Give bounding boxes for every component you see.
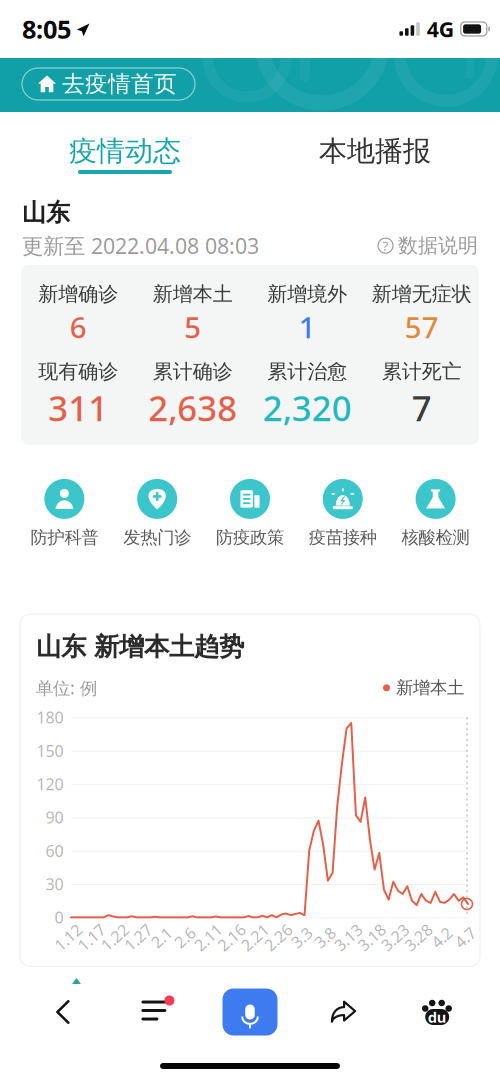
staticText: 核酸检测 [402, 527, 470, 548]
staticText: 去疫情首页 [62, 70, 177, 98]
staticText: 新增境外 [267, 282, 347, 306]
staticText: 57 [405, 307, 439, 346]
staticText: 新增本土 [153, 282, 233, 306]
staticText: 311 [48, 385, 108, 431]
staticText: 150 [36, 740, 63, 761]
staticText: 单位: 例 [36, 676, 97, 699]
staticText: 现有确诊 [38, 359, 118, 384]
staticText: 4.2 [431, 927, 453, 948]
staticText: 2.1 [150, 927, 172, 948]
button[interactable]: 去疫情首页 [22, 68, 195, 100]
staticText: 2.21 [239, 927, 270, 948]
staticText: 山东 新增本土趋势 [36, 631, 244, 662]
staticText: 发热门诊 [123, 527, 191, 548]
button[interactable]: 防护科普 [18, 479, 111, 548]
staticText: 数据说明 [398, 233, 478, 258]
staticText: ? [382, 237, 388, 254]
button[interactable]: 本地播报 [250, 112, 500, 182]
staticText: 本地播报 [319, 134, 431, 168]
staticText: 3.18 [356, 927, 387, 948]
staticText: 3.28 [403, 927, 434, 948]
button[interactable]: 发热门诊 [111, 479, 204, 548]
staticText: 山东 [22, 198, 70, 227]
staticText: 3.3 [290, 927, 312, 948]
button[interactable]: 疫苗接种 [296, 479, 389, 548]
staticText: 30 [45, 873, 63, 895]
button[interactable]: 疫情动态 [0, 112, 250, 182]
staticText: 4.7 [454, 927, 476, 948]
staticText: 8:05 [22, 12, 71, 46]
staticText: 2.16 [216, 927, 247, 948]
staticText: 7 [412, 385, 432, 431]
staticText: 6 [70, 307, 87, 346]
staticText: 新增本土 [396, 677, 464, 698]
button[interactable]: Tabs [110, 984, 203, 1040]
staticText: 3.8 [314, 927, 336, 948]
staticText: 1.17 [76, 927, 107, 948]
button[interactable]: ? [378, 233, 478, 258]
staticText: 2,638 [148, 385, 237, 431]
staticText: 1.12 [52, 927, 83, 948]
staticText: 3.23 [379, 927, 410, 948]
button[interactable]: Share [297, 984, 390, 1040]
button[interactable]: Baidu home [390, 984, 484, 1040]
staticText: 累计确诊 [153, 359, 233, 384]
staticText: 3.13 [333, 927, 364, 948]
staticText: 1 [299, 307, 316, 346]
staticText: 60 [45, 840, 63, 861]
staticText: 累计死亡 [382, 359, 462, 384]
staticText: 180 [36, 707, 63, 728]
button[interactable]: 核酸检测 [389, 479, 482, 548]
staticText: 防疫政策 [216, 527, 284, 548]
staticText: 新增无症状 [372, 282, 472, 306]
button[interactable]: Voice search [203, 984, 297, 1040]
staticText: 120 [36, 773, 63, 795]
staticText: 5 [184, 307, 201, 346]
button[interactable]: 防疫政策 [204, 479, 296, 548]
staticText: 1.27 [123, 927, 154, 948]
staticText: 90 [45, 807, 63, 828]
staticText: 累计治愈 [267, 359, 347, 384]
staticText: 2.11 [193, 927, 224, 948]
staticText: 0 [54, 907, 63, 928]
staticText: 更新至 2022.04.08 08:03 [22, 231, 259, 260]
staticText: 疫情动态 [69, 134, 181, 168]
staticText: 疫苗接种 [309, 527, 377, 548]
staticText: 新增确诊 [38, 282, 118, 306]
staticText: 1.22 [99, 927, 130, 948]
staticText: 4G [427, 15, 454, 43]
staticText: 2.26 [263, 927, 294, 948]
staticText: 防护科普 [30, 527, 98, 548]
staticText: du [428, 1007, 447, 1027]
staticText: 2,320 [263, 385, 352, 431]
staticText: 2.6 [174, 927, 196, 948]
button[interactable]: Back [16, 984, 110, 1040]
